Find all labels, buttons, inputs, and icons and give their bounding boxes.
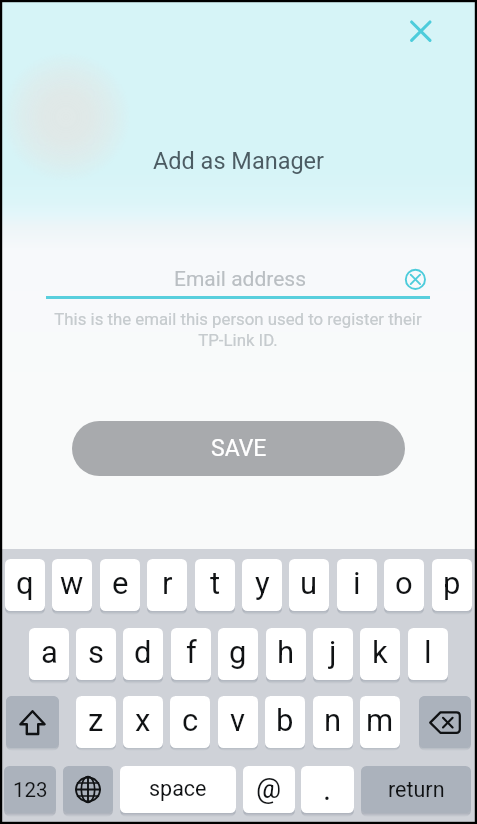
button[interactable]: Backspace [419,696,471,748]
button[interactable]: z [76,696,116,748]
button[interactable]: j [313,628,353,680]
staticText: i [353,565,361,601]
button[interactable]: u [289,559,329,611]
staticText: t [210,565,221,601]
button[interactable]: d [123,628,163,680]
staticText: k [372,634,388,670]
button[interactable]: c [170,696,210,748]
button[interactable]: s [76,628,116,680]
staticText: b [276,702,294,738]
button[interactable]: v [218,696,258,748]
button[interactable]: p [432,559,472,611]
button[interactable]: h [266,628,306,680]
button[interactable]: l [408,628,448,680]
staticText: c [182,702,199,738]
staticText: . [323,771,332,807]
staticText: o [395,565,413,601]
staticText: y [255,565,270,601]
staticText: This is the email this person used to re… [47,309,429,350]
button[interactable]: w [52,559,92,611]
button[interactable]: Close [398,8,444,54]
staticText: Add as Manager [0,147,477,175]
staticText: g [229,634,247,670]
staticText: r [162,565,173,601]
staticText: 123 [13,778,48,802]
button[interactable]: @ [243,766,295,813]
button[interactable]: e [100,559,140,611]
staticText: j [329,634,337,670]
button[interactable]: t [195,559,235,611]
button[interactable]: . [301,766,354,813]
staticText: @ [256,772,282,805]
button[interactable]: SAVE [72,421,405,476]
staticText: v [230,702,246,738]
button[interactable]: i [337,559,377,611]
staticText: e [112,565,129,601]
button[interactable]: Shift [6,696,59,748]
staticText: u [300,565,318,601]
staticText: return [388,777,445,802]
staticText: Email address [49,267,431,292]
staticText: d [134,634,152,670]
staticText: f [186,634,197,670]
staticText: q [16,565,34,601]
staticText: p [443,565,461,601]
button[interactable]: k [360,628,400,680]
staticText: s [88,634,104,670]
button[interactable]: b [265,696,305,748]
button[interactable]: x [123,696,163,748]
button[interactable]: 123 [4,766,56,813]
button[interactable]: Clear [402,266,429,293]
staticText: h [277,634,295,670]
button[interactable]: f [171,628,211,680]
staticText: w [60,565,84,601]
staticText: m [366,702,394,738]
staticText: x [135,702,151,738]
staticText: n [324,702,342,738]
button[interactable]: y [242,559,282,611]
button[interactable]: r [147,559,187,611]
button[interactable]: n [313,696,353,748]
button[interactable]: m [360,696,400,748]
staticText: SAVE [211,435,267,462]
staticText: l [424,634,432,670]
button[interactable]: o [384,559,424,611]
button[interactable]: return [361,766,471,813]
button[interactable]: space [120,766,236,813]
button[interactable]: g [218,628,258,680]
staticText: space [149,776,207,801]
staticText: z [88,702,104,738]
button[interactable]: q [5,559,45,611]
button[interactable]: Switch keyboard [63,766,113,813]
button[interactable]: a [29,628,69,680]
staticText: a [41,634,58,670]
